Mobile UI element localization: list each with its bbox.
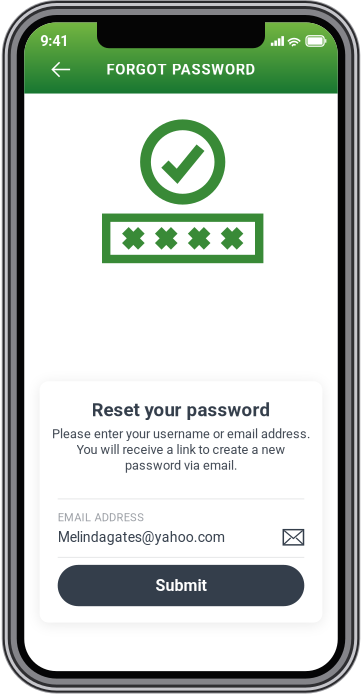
button[interactable]: Back — [40, 54, 82, 84]
staticText: Melindagates@yahoo.com — [58, 529, 225, 545]
staticText: EMAIL ADDRESS — [58, 511, 144, 524]
staticText: password via email. — [125, 458, 237, 473]
staticText: 9:41 — [40, 32, 68, 50]
staticText: Please enter your username or email addr… — [52, 426, 310, 441]
button[interactable]: Submit — [58, 565, 304, 606]
staticText: You will receive a link to create a new — [76, 442, 285, 457]
staticText: FORGOT PASSWORD — [106, 61, 256, 78]
button[interactable]: Email — [282, 529, 304, 546]
staticText: Reset your password — [91, 399, 270, 421]
staticText: Submit — [155, 576, 206, 595]
